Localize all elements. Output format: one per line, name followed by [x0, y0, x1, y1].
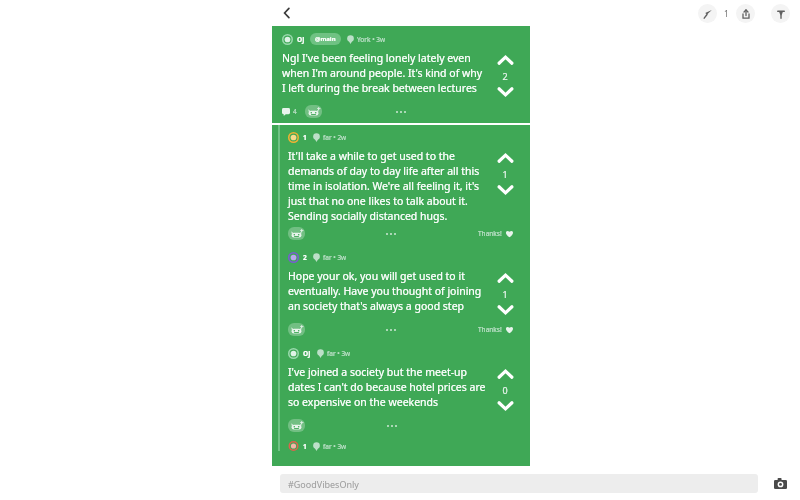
button[interactable]: Thanks	[478, 325, 514, 334]
staticText: 1	[724, 8, 729, 19]
button[interactable]: Downvote	[496, 396, 515, 415]
staticText: 1	[502, 168, 508, 180]
button[interactable]: Boost	[698, 4, 717, 23]
staticText: It'll take a while to get used to the de…	[288, 149, 486, 223]
staticText: Thanks!	[478, 229, 502, 238]
staticText: far • 3w	[323, 253, 347, 262]
button[interactable]: Upvote	[496, 149, 515, 168]
button[interactable]: Add reaction	[288, 227, 305, 240]
staticText: @main	[315, 35, 336, 43]
staticText: Ngl I've been feeling lonely lately even…	[282, 51, 486, 95]
staticText: 1	[303, 133, 307, 142]
staticText: 1	[303, 442, 307, 451]
button[interactable]: Comments	[282, 107, 297, 116]
button[interactable]: Add reaction	[305, 105, 322, 118]
button[interactable]: Share	[736, 4, 755, 23]
staticText: far • 3w	[323, 442, 347, 451]
button[interactable]: Upvote	[496, 365, 515, 384]
button[interactable]: #GoodVibesOnly	[280, 474, 758, 493]
button[interactable]: Back	[278, 4, 296, 22]
button[interactable]: More options	[382, 229, 400, 239]
staticText: 1	[502, 288, 508, 300]
staticText: +	[317, 105, 321, 113]
staticText: #GoodVibesOnly	[288, 478, 359, 490]
button[interactable]: Pin	[771, 4, 790, 23]
staticText: Thanks!	[478, 325, 502, 334]
staticText: York • 3w	[357, 35, 386, 44]
button[interactable]: Thanks	[478, 229, 514, 238]
staticText: far • 3w	[327, 349, 351, 358]
staticText: far • 2w	[323, 133, 347, 142]
button[interactable]: OJ	[272, 26, 526, 123]
staticText: Hope your ok, you will get used to it ev…	[288, 269, 486, 313]
button[interactable]: Add reaction	[288, 419, 305, 432]
staticText: 4	[293, 107, 297, 116]
button[interactable]: More options	[383, 421, 401, 431]
staticText: 2	[303, 253, 307, 262]
button[interactable]: 1	[280, 125, 526, 245]
button[interactable]: Camera	[770, 473, 790, 493]
button[interactable]: Upvote	[496, 269, 515, 288]
staticText: +	[300, 419, 304, 427]
button[interactable]: Upvote	[496, 51, 515, 70]
staticText: +	[300, 227, 304, 235]
staticText: +	[300, 323, 304, 331]
button[interactable]: Downvote	[496, 300, 515, 319]
button[interactable]: More options	[382, 325, 400, 335]
staticText: 2	[502, 70, 508, 82]
button[interactable]: 2	[280, 245, 526, 341]
button[interactable]: Downvote	[496, 180, 515, 199]
button[interactable]: Add reaction	[288, 323, 305, 336]
staticText: OJ	[303, 349, 311, 358]
staticText: 0	[502, 384, 508, 396]
staticText: I've joined a society but the meet-up da…	[288, 365, 486, 409]
button[interactable]: More options	[392, 107, 410, 117]
button[interactable]: Downvote	[496, 82, 515, 101]
staticText: OJ	[297, 35, 305, 44]
button[interactable]: OJ	[280, 341, 526, 437]
